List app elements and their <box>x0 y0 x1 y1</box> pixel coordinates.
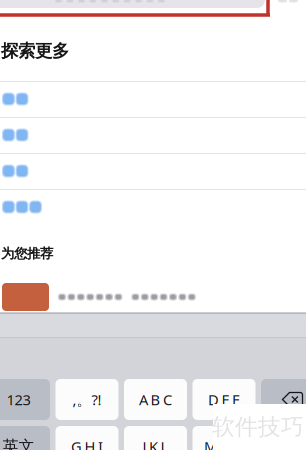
staticText: 123 <box>6 390 30 409</box>
staticText: MNO <box>204 437 244 450</box>
button[interactable]: 123 <box>0 379 50 420</box>
button[interactable]: ABC <box>124 379 187 420</box>
staticText: 软件技巧 <box>212 413 304 441</box>
staticText: ABC <box>139 390 172 409</box>
staticText: ,。?! <box>72 390 101 409</box>
staticText: GHI <box>71 437 103 450</box>
button[interactable] <box>2 189 306 225</box>
staticText: 英文 <box>2 437 34 450</box>
button[interactable] <box>261 379 306 420</box>
button[interactable]: ,。?! <box>55 379 118 420</box>
button[interactable] <box>2 117 306 153</box>
staticText: JKL <box>142 437 168 450</box>
staticText: 为您推荐 <box>1 245 53 262</box>
staticText: DEF <box>208 390 240 409</box>
button[interactable]: GHI <box>55 426 118 450</box>
button[interactable]: JKL <box>124 426 187 450</box>
button[interactable] <box>2 81 306 117</box>
button[interactable] <box>2 153 306 189</box>
staticText: 探索更多 <box>1 40 69 62</box>
button[interactable]: 英文 <box>0 426 50 450</box>
button[interactable]: DEF <box>192 379 255 420</box>
button[interactable]: MNO <box>192 426 255 450</box>
button[interactable] <box>261 426 306 450</box>
button[interactable] <box>2 282 306 312</box>
